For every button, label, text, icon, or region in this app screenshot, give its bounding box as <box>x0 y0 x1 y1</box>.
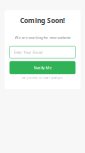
staticText: Enter Your Email <box>13 49 42 55</box>
staticText: Notify Me <box>33 65 51 70</box>
button[interactable]: Enter Your Email <box>9 46 75 58</box>
staticText: Coming Soon! <box>20 16 65 25</box>
button[interactable]: Notify Me <box>9 61 75 74</box>
staticText: We are working for new website <box>14 35 70 40</box>
staticText: We promise to never spam you <box>22 76 63 80</box>
